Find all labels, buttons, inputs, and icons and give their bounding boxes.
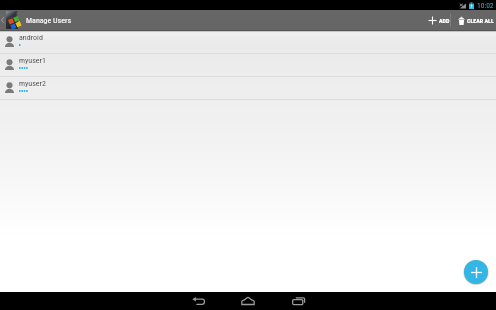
staticText: CLEAR ALL <box>467 17 494 24</box>
staticText: android <box>19 33 43 42</box>
button[interactable]: Navigate up <box>0 10 23 30</box>
button[interactable]: Home <box>223 292 273 310</box>
button[interactable]: myuser2 <box>0 77 496 100</box>
button[interactable]: android <box>0 31 496 54</box>
staticText: 10:02 <box>477 1 494 10</box>
button[interactable]: CLEAR ALL <box>451 10 496 30</box>
staticText: ADD <box>439 17 450 24</box>
button[interactable]: Recent apps <box>273 292 323 310</box>
staticText: Manage Users <box>26 16 72 25</box>
button[interactable]: Back <box>173 292 223 310</box>
button[interactable]: myuser1 <box>0 54 496 77</box>
button[interactable]: Add user <box>463 259 489 285</box>
staticText: myuser1 <box>19 56 47 65</box>
button[interactable]: ADD <box>422 10 450 30</box>
staticText: myuser2 <box>19 79 47 88</box>
